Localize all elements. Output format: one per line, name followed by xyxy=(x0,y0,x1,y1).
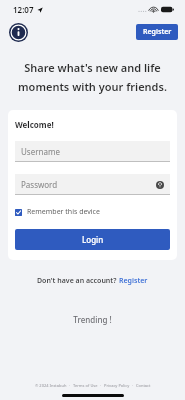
staticText: Remember this device xyxy=(27,207,100,217)
staticText: Don't have an account? xyxy=(37,276,119,286)
staticText: Trending ! xyxy=(0,314,185,325)
staticText: Username xyxy=(21,146,60,157)
staticText: moments with your friends. xyxy=(18,79,167,94)
button[interactable]: Register xyxy=(136,24,178,40)
button[interactable]: Home logo xyxy=(8,22,28,42)
staticText: · xyxy=(98,383,104,388)
staticText: Share what's new and life xyxy=(24,60,161,75)
staticText: Login xyxy=(82,234,104,245)
staticText: · xyxy=(130,383,136,388)
button[interactable]: Terms of Use xyxy=(73,383,98,388)
staticText: © 2024 Instabuh xyxy=(35,383,67,388)
button[interactable]: Privacy Policy xyxy=(104,383,130,388)
button[interactable]: Remember this device xyxy=(15,206,100,218)
staticText: Password xyxy=(21,179,58,190)
button[interactable]: Password xyxy=(15,174,170,194)
button[interactable]: Login xyxy=(15,229,170,250)
staticText: · xyxy=(67,383,73,388)
staticText: Welcome! xyxy=(15,119,54,130)
staticText: 12:07 xyxy=(13,4,34,15)
staticText: Register xyxy=(143,27,172,37)
button[interactable]: Password help xyxy=(155,180,164,189)
button[interactable]: Username xyxy=(15,141,170,161)
button[interactable]: Contact xyxy=(136,383,151,388)
button[interactable]: Don't have an account? xyxy=(0,276,185,286)
staticText: Register xyxy=(119,276,148,286)
